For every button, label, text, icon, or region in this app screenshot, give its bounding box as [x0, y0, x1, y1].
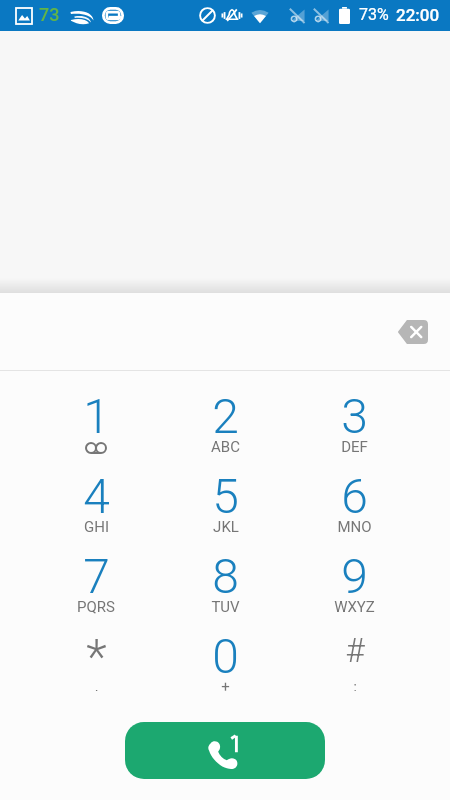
staticText: 73 [39, 4, 60, 25]
staticText: GHI [84, 518, 109, 536]
staticText: 7 [83, 548, 110, 604]
button[interactable]: * [31, 611, 161, 691]
button[interactable]: 0 [161, 611, 290, 691]
staticText: 3 [341, 388, 368, 444]
button[interactable]: # [290, 611, 419, 691]
staticText: 9 [341, 548, 368, 604]
staticText: 6 [341, 468, 368, 524]
staticText: ; [353, 678, 357, 696]
staticText: * [86, 628, 107, 684]
button[interactable]: 4 [31, 451, 161, 531]
button[interactable]: 2 [161, 371, 290, 451]
staticText: DEF [341, 438, 368, 456]
staticText: TUV [211, 598, 240, 616]
staticText: PQRS [77, 598, 115, 616]
staticText: 1 [83, 388, 110, 444]
button[interactable]: 9 [290, 531, 419, 611]
staticText: , [95, 678, 98, 696]
staticText: # [345, 631, 365, 670]
staticText: 5 [212, 468, 239, 524]
button[interactable]: 8 [161, 531, 290, 611]
staticText: MNO [337, 518, 372, 536]
button[interactable]: 6 [290, 451, 419, 531]
staticText: 0 [212, 628, 239, 684]
staticText: WXYZ [334, 598, 375, 616]
button[interactable]: 1 [31, 371, 161, 451]
staticText: 4 [83, 468, 110, 524]
button[interactable]: 3 [290, 371, 419, 451]
staticText: 8 [212, 548, 239, 604]
staticText: JKL [213, 518, 239, 536]
staticText: + [221, 678, 230, 696]
button[interactable]: Backspace [388, 308, 436, 356]
button[interactable]: 5 [161, 451, 290, 531]
button[interactable]: 7 [31, 531, 161, 611]
staticText: 22:00 [396, 5, 440, 25]
staticText: 73% [359, 5, 389, 24]
staticText: 2 [212, 388, 239, 444]
staticText: ABC [211, 438, 240, 456]
button[interactable]: Call [125, 722, 325, 779]
